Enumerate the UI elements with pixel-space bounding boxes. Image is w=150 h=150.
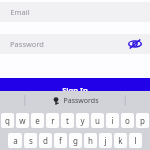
button[interactable]: f <box>54 133 67 148</box>
button[interactable]: k <box>114 133 127 148</box>
staticText: d <box>43 135 48 146</box>
staticText: w <box>19 115 26 126</box>
button[interactable]: a <box>8 133 22 148</box>
button[interactable]: h <box>84 133 97 148</box>
button[interactable]: d <box>39 133 52 148</box>
button[interactable]: j <box>99 133 112 148</box>
staticText: u <box>95 115 100 126</box>
button[interactable]: y <box>76 113 89 128</box>
button[interactable]: Passwords <box>52 96 99 106</box>
button[interactable]: w <box>16 113 29 128</box>
staticText: Email <box>10 7 30 17</box>
staticText: l <box>134 135 137 146</box>
staticText: h <box>88 135 93 146</box>
button[interactable]: r <box>46 113 59 128</box>
staticText: a <box>13 135 18 146</box>
button[interactable]: g <box>69 133 82 148</box>
button[interactable]: t <box>61 113 74 128</box>
staticText: Password <box>10 39 44 49</box>
staticText: y <box>80 115 85 126</box>
staticText: o <box>125 115 130 126</box>
staticText: s <box>29 135 33 146</box>
staticText: q <box>5 115 10 126</box>
button[interactable]: Show password <box>127 36 143 52</box>
button[interactable]: s <box>24 133 37 148</box>
staticText: r <box>51 115 55 126</box>
staticText: Passwords <box>63 96 99 106</box>
button[interactable]: Password <box>0 34 150 54</box>
button[interactable]: Email <box>0 2 150 22</box>
staticText: j <box>104 135 107 146</box>
staticText: k <box>118 135 123 146</box>
staticText: t <box>66 115 69 126</box>
button[interactable]: o <box>121 113 134 128</box>
button[interactable]: u <box>91 113 104 128</box>
button[interactable]: q <box>1 113 14 128</box>
button[interactable]: Sign In <box>0 78 150 101</box>
staticText: g <box>73 135 78 146</box>
staticText: e <box>35 115 40 126</box>
staticText: i <box>111 115 114 126</box>
staticText: f <box>59 135 62 146</box>
button[interactable]: l <box>129 133 142 148</box>
staticText: p <box>140 115 145 126</box>
staticText: Sign In <box>62 85 88 95</box>
button[interactable]: e <box>31 113 44 128</box>
button[interactable]: i <box>106 113 119 128</box>
button[interactable]: p <box>136 113 149 128</box>
